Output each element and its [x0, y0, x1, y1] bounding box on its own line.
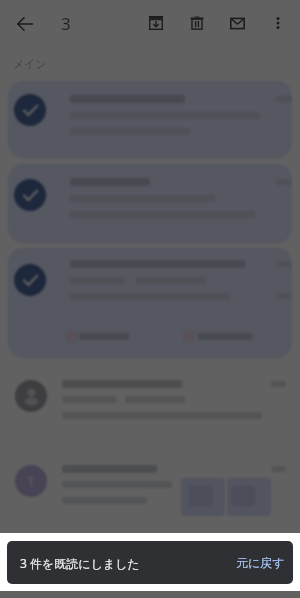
staticText: 3: [61, 12, 71, 35]
staticText: T: [27, 471, 36, 491]
button[interactable]: [0, 380, 300, 428]
button[interactable]: Delete: [181, 7, 213, 39]
button[interactable]: [8, 248, 292, 358]
staticText: 元に戻す: [236, 555, 285, 570]
button[interactable]: Back: [8, 7, 41, 40]
button[interactable]: 元に戻す: [231, 550, 290, 575]
staticText: メイン: [13, 57, 47, 71]
button[interactable]: [8, 164, 292, 243]
button[interactable]: 3 件を既読にしました: [7, 541, 293, 584]
button[interactable]: Mark as unread: [221, 7, 253, 39]
button[interactable]: More options: [262, 7, 294, 39]
button[interactable]: T: [0, 465, 300, 513]
staticText: 3 件を既読にしました: [20, 555, 140, 571]
button[interactable]: [8, 81, 292, 158]
button[interactable]: Archive: [140, 7, 172, 39]
